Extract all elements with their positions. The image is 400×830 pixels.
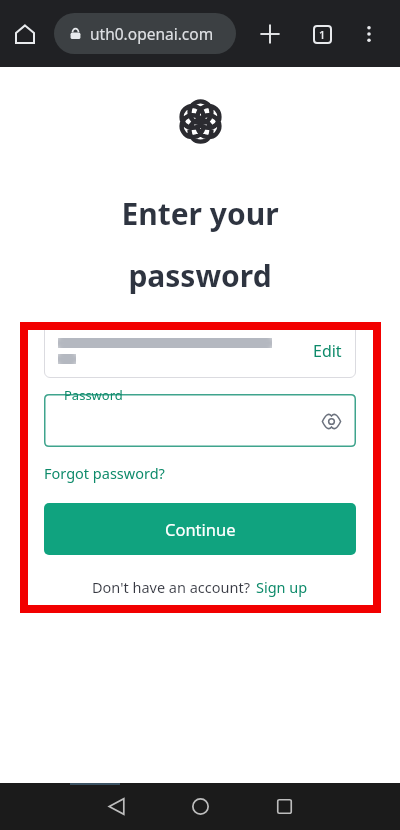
button[interactable]: uth0.openai.com: [54, 13, 236, 54]
staticText: Continue: [165, 518, 236, 540]
staticText: Edit: [313, 340, 342, 362]
staticText: Password: [64, 386, 123, 404]
staticText: Don't have an account?: [92, 577, 250, 597]
staticText: 1: [319, 27, 326, 42]
button[interactable]: New tab: [252, 16, 288, 52]
button[interactable]: Home: [171, 783, 229, 830]
button[interactable]: Edit: [44, 323, 356, 378]
staticText: Forgot password?: [44, 463, 165, 483]
staticText: Sign up: [256, 577, 308, 597]
button[interactable]: Home: [7, 16, 43, 52]
button[interactable]: Edit: [313, 340, 342, 362]
button[interactable]: Continue: [44, 503, 356, 555]
button[interactable]: Show password: [314, 404, 348, 438]
staticText: password: [128, 255, 272, 296]
button[interactable]: Back: [87, 783, 145, 830]
button[interactable]: Recent apps: [255, 783, 313, 830]
button[interactable]: More options: [351, 16, 387, 52]
staticText: Enter your: [121, 193, 279, 234]
button[interactable]: Forgot password?: [44, 463, 165, 483]
button[interactable]: Tabs, 1 open: [304, 16, 340, 52]
button[interactable]: Sign up: [256, 577, 308, 597]
staticText: uth0.openai.com: [90, 23, 214, 44]
